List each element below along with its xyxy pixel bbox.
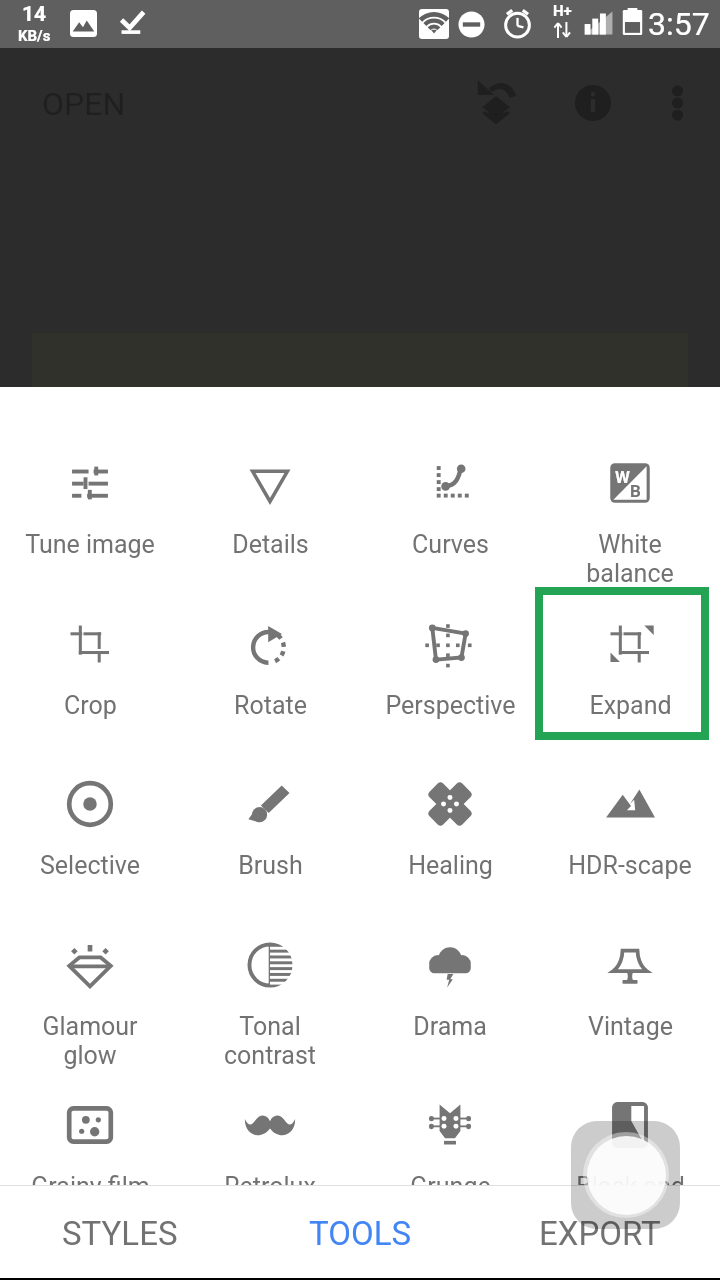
staticText: Black and white xyxy=(576,1172,685,1230)
button[interactable]: Vintage xyxy=(540,938,720,1091)
staticText: KB/s xyxy=(18,27,51,45)
button[interactable]: Tune image xyxy=(0,456,180,609)
button[interactable]: Revert xyxy=(468,72,526,130)
staticText: Selective xyxy=(40,851,140,880)
button[interactable]: Expand xyxy=(540,617,720,770)
button[interactable]: Selective xyxy=(0,777,180,930)
button[interactable]: Details xyxy=(180,456,360,609)
button[interactable]: Curves xyxy=(360,456,540,609)
staticText: 3:57 xyxy=(648,5,710,43)
button[interactable]: TOOLS xyxy=(240,1186,480,1280)
button[interactable]: OPEN xyxy=(26,78,136,130)
button[interactable]: EXPORT xyxy=(480,1186,720,1280)
staticText: Crop xyxy=(64,691,117,720)
button[interactable]: Info xyxy=(564,74,622,132)
button[interactable]: Black and white xyxy=(540,1098,720,1251)
staticText: W xyxy=(615,467,630,487)
button[interactable]: Healing xyxy=(360,777,540,930)
staticText: Glamour glow xyxy=(42,1012,138,1070)
staticText: EXPORT xyxy=(539,1214,661,1253)
staticText: Tonal contrast xyxy=(224,1012,316,1070)
staticText: Healing xyxy=(408,851,493,880)
staticText: Expand xyxy=(589,691,672,720)
staticText: Tune image xyxy=(25,530,155,559)
button[interactable]: Retrolux xyxy=(180,1098,360,1251)
staticText: Retrolux xyxy=(224,1172,316,1201)
staticText: Perspective xyxy=(385,691,516,720)
staticText: Drama xyxy=(413,1012,487,1041)
staticText: Brush xyxy=(238,851,303,880)
staticText: Rotate xyxy=(234,691,307,720)
staticText: HDR-scape xyxy=(568,851,692,880)
button[interactable]: Rotate xyxy=(180,617,360,770)
staticText: OPEN xyxy=(42,85,126,123)
staticText: 14 xyxy=(22,2,47,27)
button[interactable]: Tonal contrast xyxy=(180,938,360,1091)
staticText: White balance xyxy=(586,530,674,588)
staticText: Grainy film xyxy=(31,1172,150,1201)
staticText: Vintage xyxy=(588,1012,673,1041)
staticText: H+ xyxy=(553,2,572,20)
button[interactable]: STYLES xyxy=(0,1186,240,1280)
button[interactable]: HDR-scape xyxy=(540,777,720,930)
staticText: Grunge xyxy=(410,1172,491,1201)
button[interactable]: Glamour glow xyxy=(0,938,180,1091)
button[interactable]: W xyxy=(540,456,720,609)
staticText: STYLES xyxy=(62,1214,178,1253)
button[interactable]: Brush xyxy=(180,777,360,930)
button[interactable]: Drama xyxy=(360,938,540,1091)
staticText: Details xyxy=(232,530,309,559)
staticText: TOOLS xyxy=(309,1214,412,1253)
button[interactable]: Perspective xyxy=(360,617,540,770)
button[interactable]: Crop xyxy=(0,617,180,770)
staticText: Curves xyxy=(412,530,489,559)
staticText: B xyxy=(630,481,641,501)
button[interactable]: Grainy film xyxy=(0,1098,180,1251)
button[interactable]: Screen recorder xyxy=(571,1121,680,1229)
button[interactable]: Grunge xyxy=(360,1098,540,1251)
button[interactable]: More options xyxy=(648,74,706,132)
